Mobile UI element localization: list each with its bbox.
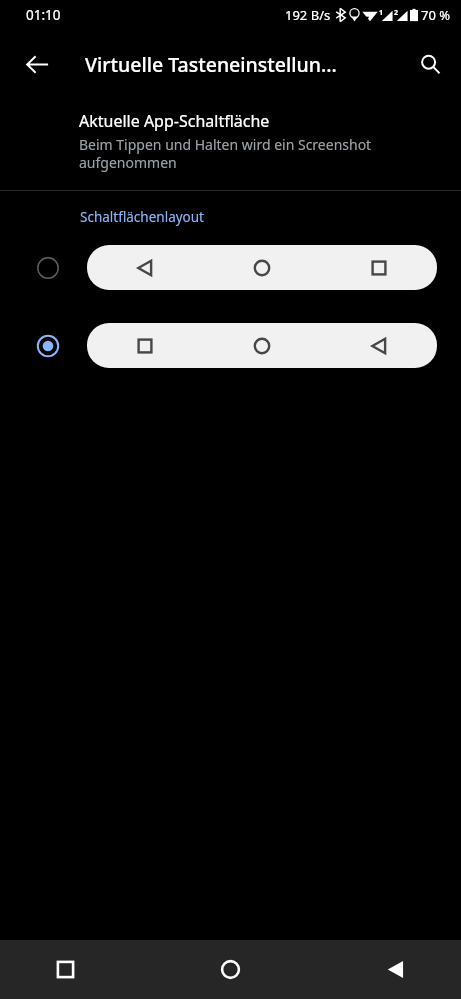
- button[interactable]: Zurück: [13, 40, 61, 88]
- staticText: Schaltflächenlayout: [80, 208, 204, 226]
- staticText: 2: [394, 8, 399, 18]
- button[interactable]: [0, 323, 461, 368]
- staticText: 192 B/s: [285, 6, 331, 24]
- staticText: Beim Tippen und Halten wird ein Screensh…: [79, 135, 439, 172]
- staticText: Virtuelle Tasteneinstellun…: [85, 51, 337, 78]
- button[interactable]: Suchen: [406, 40, 454, 88]
- staticText: Aktuelle App-Schaltfläche: [79, 110, 270, 132]
- button[interactable]: Startbildschirm: [153, 940, 307, 999]
- staticText: 70 %: [421, 6, 451, 24]
- button[interactable]: Aktuelle App-Schaltfläche: [0, 98, 461, 190]
- button[interactable]: [0, 245, 461, 290]
- button[interactable]: Zurück: [307, 940, 461, 999]
- staticText: 1: [379, 8, 384, 18]
- button[interactable]: Letzte Apps: [0, 940, 153, 999]
- staticText: 01:10: [26, 6, 61, 24]
